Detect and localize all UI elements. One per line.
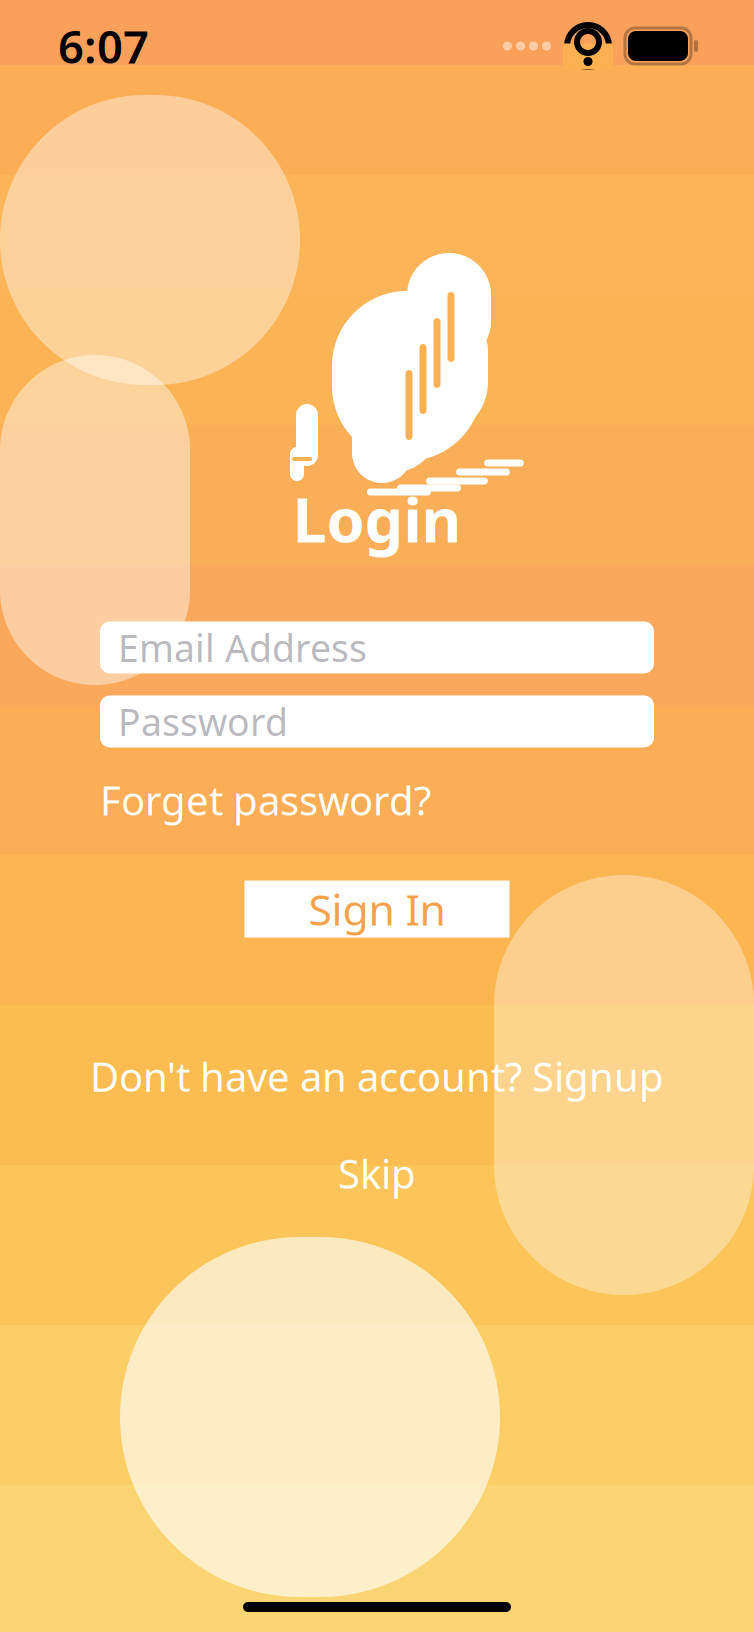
staticText: 6:07 [58, 16, 149, 76]
staticText: Skip [338, 1147, 416, 1200]
button[interactable]: Sign In [244, 881, 509, 938]
staticText: Sign In [308, 881, 445, 937]
button[interactable]: Don't have an account? Signup [90, 1050, 664, 1103]
button[interactable]: Skip [338, 1147, 416, 1200]
staticText: Email Address [118, 623, 367, 672]
staticText: Don't have an account? Signup [90, 1050, 664, 1103]
staticText: Password [118, 697, 288, 746]
button[interactable]: Forget password? [100, 773, 431, 826]
staticText: Login [292, 478, 461, 559]
staticText: Forget password? [100, 773, 431, 826]
